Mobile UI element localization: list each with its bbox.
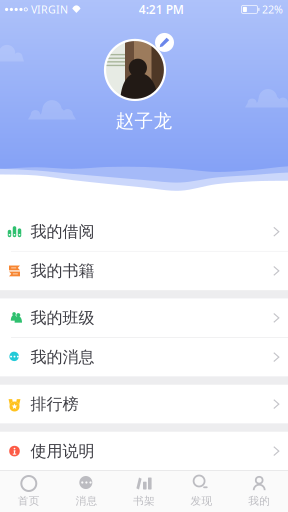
staticText: 我的书籍 [30,261,94,281]
button[interactable]: 书架 [115,471,173,512]
button[interactable]: 使用说明 [0,432,288,470]
staticText: 我的 [248,494,270,508]
staticText: 22% [262,2,283,17]
button[interactable]: 我的书籍 [0,252,288,290]
button[interactable]: 我的班级 [0,299,288,337]
button[interactable]: 编辑头像 [155,33,174,52]
staticText: 书架 [133,494,155,508]
staticText: 发现 [191,494,213,508]
staticText: 4:21 PM [139,1,184,17]
staticText: 排行榜 [30,394,78,414]
button[interactable]: 排行榜 [0,385,288,423]
staticText: 首页 [18,494,40,508]
staticText: VIRGIN [31,2,68,17]
staticText: 消息 [75,494,97,508]
button[interactable]: 我的借阅 [0,212,288,251]
button[interactable]: 消息 [58,471,115,512]
button[interactable]: 首页 [0,471,58,512]
staticText: 我的消息 [30,347,94,367]
staticText: 我的班级 [30,308,94,328]
button[interactable]: 发现 [173,471,230,512]
staticText: 我的借阅 [30,222,94,242]
button[interactable]: 我的 [230,471,288,512]
staticText: 赵子龙 [115,109,172,132]
staticText: 使用说明 [30,441,94,461]
button[interactable]: 我的消息 [0,338,288,376]
